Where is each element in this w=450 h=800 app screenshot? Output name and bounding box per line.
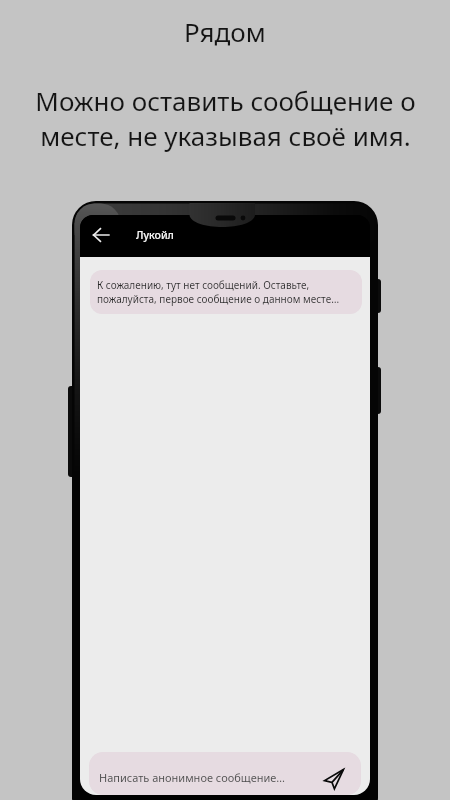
button[interactable]: К сожалению, тут нет сообщений. Оставьте…	[90, 270, 362, 314]
button[interactable]: Back	[86, 220, 116, 250]
staticText: К сожалению, тут нет сообщений. Оставьте…	[97, 278, 340, 306]
staticText: Лукойл	[136, 228, 174, 242]
staticText: Можно оставить сообщение о месте, не ука…	[35, 83, 416, 153]
button[interactable]: Send message	[321, 766, 347, 792]
button[interactable]: Написать анонимное сообщение…	[89, 752, 361, 795]
staticText: Написать анонимное сообщение…	[99, 770, 327, 785]
staticText: Рядом	[184, 14, 266, 49]
